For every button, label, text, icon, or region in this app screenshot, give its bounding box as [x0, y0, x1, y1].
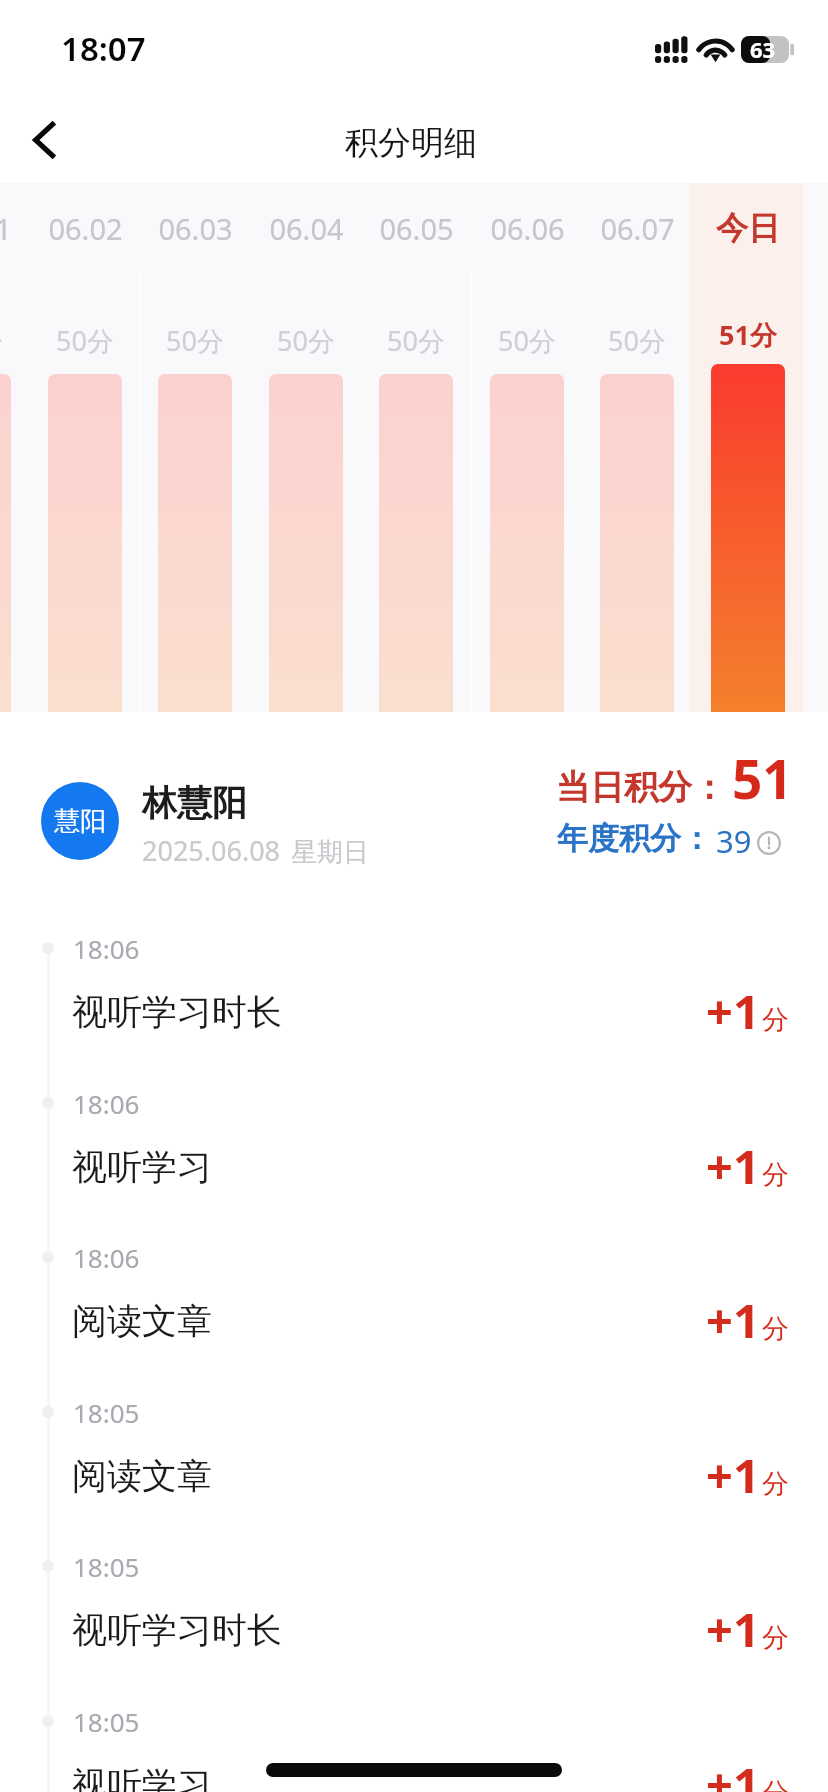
staticText: 50分 — [387, 322, 445, 359]
staticText: 06.04 — [269, 209, 344, 248]
button[interactable]: 18:05 — [0, 1540, 828, 1695]
staticText: 当日积分： — [556, 766, 726, 809]
button[interactable]: Info — [756, 830, 782, 856]
button[interactable] — [471, 183, 582, 712]
staticText: 50分 — [277, 322, 335, 359]
staticText: 18:05 — [73, 1704, 140, 1739]
staticText: 50分 — [56, 322, 114, 359]
staticText: 星期日 — [291, 836, 369, 869]
button[interactable] — [582, 183, 693, 712]
staticText: +1 — [706, 1597, 760, 1661]
staticText: 分 — [762, 1621, 789, 1655]
staticText: +1 — [706, 1443, 760, 1507]
staticText: 分 — [762, 1312, 789, 1346]
button[interactable] — [0, 183, 30, 712]
button[interactable] — [140, 183, 251, 712]
staticText: 06.03 — [158, 209, 233, 248]
staticText: 06.01 — [0, 209, 12, 248]
staticText: 50分 — [0, 322, 3, 359]
staticText: 63 — [750, 34, 776, 61]
staticText: 视听学习时长 — [72, 990, 282, 1034]
staticText: 积分明细 — [345, 122, 477, 164]
staticText: 阅读文章 — [72, 1299, 212, 1343]
staticText: 50分 — [608, 322, 666, 359]
staticText: 视听学习 — [72, 1145, 212, 1189]
staticText: 18:07 — [61, 26, 146, 71]
button[interactable]: 18:05 — [0, 1695, 828, 1792]
staticText: 分 — [762, 1467, 789, 1501]
staticText: 慧阳 — [54, 805, 106, 838]
button[interactable]: 18:06 — [0, 1077, 828, 1232]
button[interactable] — [250, 183, 361, 712]
staticText: +1 — [706, 1134, 760, 1198]
staticText: 18:06 — [73, 1086, 140, 1121]
staticText: +1 — [706, 979, 760, 1043]
staticText: 18:06 — [73, 931, 140, 966]
staticText: 06.05 — [379, 209, 454, 248]
button[interactable]: 18:06 — [0, 1231, 828, 1386]
button[interactable] — [29, 183, 140, 712]
staticText: 分 — [762, 1776, 789, 1792]
staticText: 51分 — [719, 316, 777, 353]
staticText: 18:05 — [73, 1549, 140, 1584]
button[interactable]: Back — [6, 101, 84, 179]
staticText: 06.07 — [600, 209, 675, 248]
staticText: 50分 — [166, 322, 224, 359]
staticText: 18:05 — [73, 1395, 140, 1430]
staticText: 51 — [732, 742, 793, 814]
button[interactable] — [692, 183, 803, 712]
staticText: 50分 — [498, 322, 556, 359]
staticText: 分 — [762, 1158, 789, 1192]
button[interactable]: 18:06 — [0, 922, 828, 1077]
staticText: 年度积分： — [557, 819, 712, 858]
staticText: 视听学习 — [72, 1763, 212, 1792]
staticText: +1 — [706, 1752, 760, 1792]
staticText: 2025.06.08 — [142, 832, 281, 869]
staticText: 18:06 — [73, 1240, 140, 1275]
button[interactable]: 18:05 — [0, 1386, 828, 1541]
staticText: 39 — [716, 820, 752, 862]
staticText: 分 — [762, 1003, 789, 1037]
staticText: 林慧阳 — [142, 781, 247, 825]
staticText: 06.06 — [490, 209, 565, 248]
staticText: 阅读文章 — [72, 1454, 212, 1498]
staticText: 06.02 — [48, 209, 123, 248]
staticText: +1 — [706, 1288, 760, 1352]
staticText: 视听学习时长 — [72, 1608, 282, 1652]
button[interactable]: 慧阳 — [41, 782, 119, 860]
button[interactable] — [361, 183, 472, 712]
staticText: 今日 — [716, 208, 780, 248]
